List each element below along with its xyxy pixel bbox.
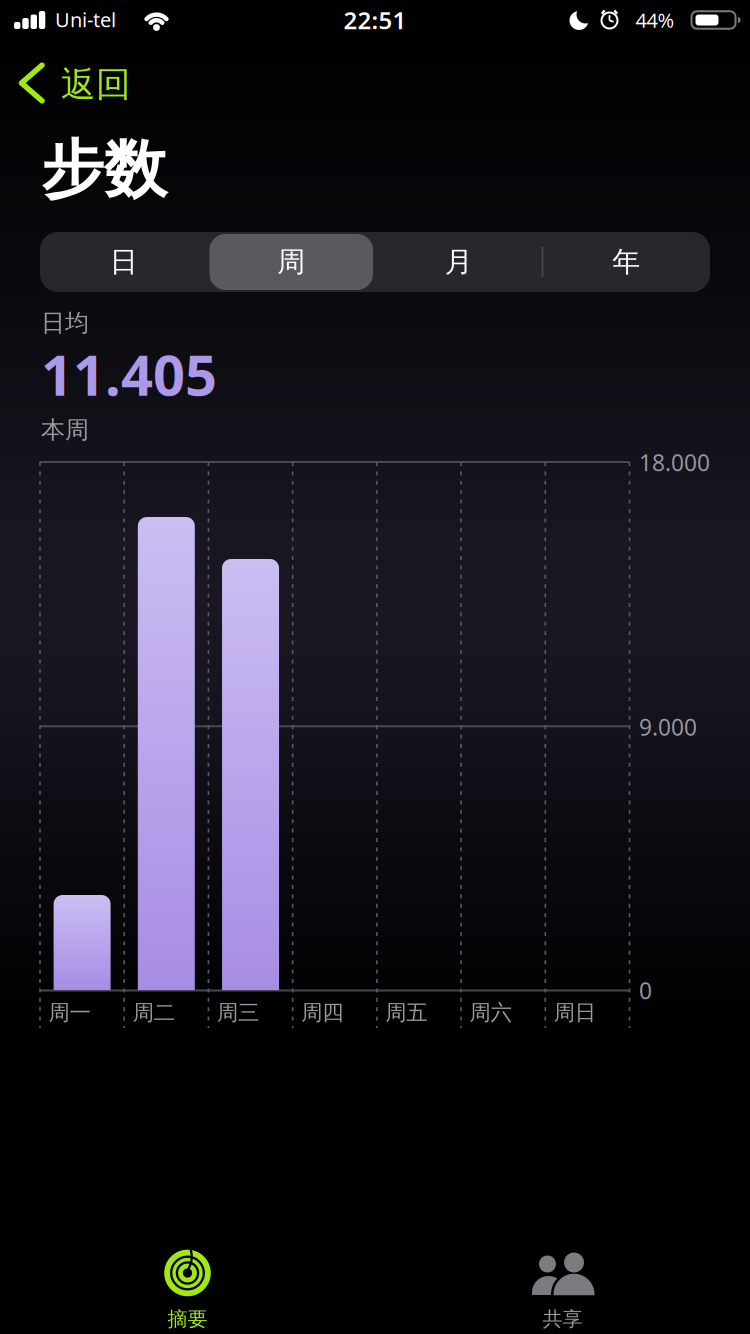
staticText: 共享 — [542, 1307, 582, 1331]
staticText: 年 — [612, 245, 640, 279]
staticText: 摘要 — [167, 1307, 207, 1331]
staticText: 月 — [445, 245, 473, 279]
staticText: 周一 — [48, 1000, 90, 1026]
staticText: 周四 — [301, 1000, 343, 1026]
staticText: 周 — [277, 245, 305, 279]
staticText: 周二 — [133, 1000, 175, 1026]
staticText: 周五 — [385, 1000, 427, 1026]
staticText: 周六 — [470, 1000, 512, 1026]
staticText: 日 — [110, 245, 138, 279]
staticText: 18.000 — [639, 447, 710, 477]
staticText: 步数 — [41, 131, 167, 208]
staticText: 11.405 — [41, 337, 217, 411]
staticText: 0 — [639, 975, 652, 1005]
staticText: 周三 — [217, 1000, 259, 1026]
staticText: 本周 — [41, 415, 89, 445]
staticText: 周日 — [554, 1000, 596, 1026]
staticText: 9.000 — [639, 712, 697, 742]
staticText: 日均 — [41, 308, 89, 338]
staticText: Uni-tel — [55, 6, 116, 33]
staticText: 返回 — [61, 63, 131, 106]
staticText: 22:51 — [343, 4, 406, 36]
staticText: 44% — [635, 7, 674, 33]
